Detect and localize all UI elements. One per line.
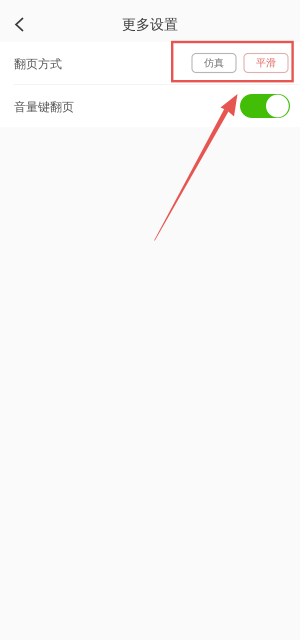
staticText: 音量键翻页 [14,99,74,114]
staticText: 平滑 [256,57,276,69]
button[interactable]: 音量键翻页开关 [240,94,290,118]
staticText: 翻页方式 [14,56,62,71]
button[interactable]: 仿真 [192,53,236,72]
staticText: 更多设置 [122,16,178,33]
button[interactable]: 平滑 [244,53,288,72]
staticText: 仿真 [204,57,224,69]
button[interactable]: Back [0,6,44,42]
